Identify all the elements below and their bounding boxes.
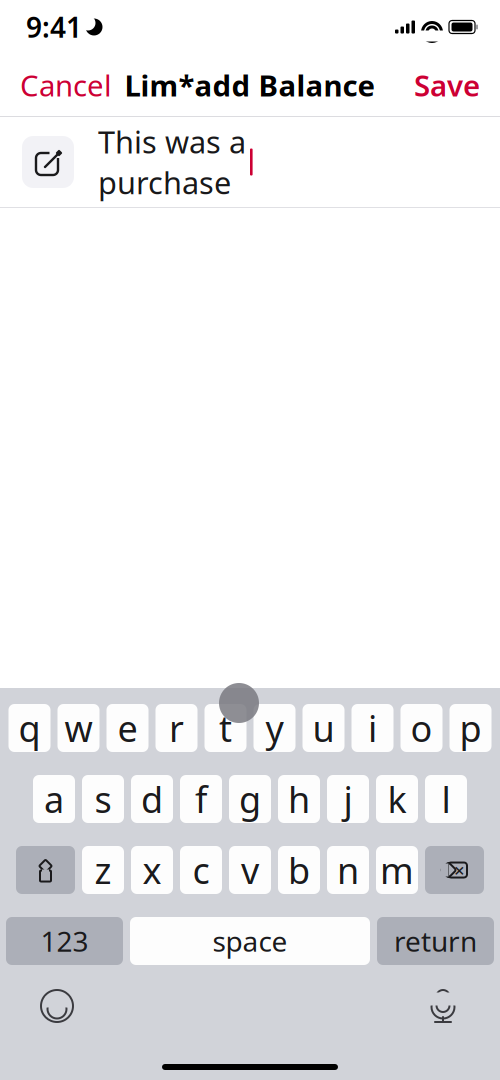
staticText: This was a purchase bbox=[98, 121, 246, 203]
button[interactable]: n bbox=[327, 846, 369, 894]
staticText: z bbox=[94, 846, 111, 894]
button[interactable]: k bbox=[376, 775, 418, 823]
button[interactable]: v bbox=[229, 846, 271, 894]
button[interactable]: a bbox=[33, 775, 75, 823]
staticText: j bbox=[343, 775, 352, 823]
button[interactable]: f bbox=[180, 775, 222, 823]
button[interactable]: o bbox=[400, 704, 442, 752]
button[interactable]: Dictation bbox=[416, 979, 470, 1033]
staticText: t bbox=[219, 704, 232, 752]
button[interactable]: m bbox=[376, 846, 418, 894]
button[interactable]: z bbox=[82, 846, 124, 894]
button[interactable]: i bbox=[351, 704, 393, 752]
staticText: l bbox=[441, 775, 450, 823]
button[interactable]: This was a purchase bbox=[74, 129, 287, 195]
button[interactable]: space bbox=[130, 917, 370, 965]
staticText: Cancel bbox=[20, 65, 112, 104]
staticText: space bbox=[212, 922, 287, 960]
button[interactable]: b bbox=[278, 846, 320, 894]
staticText: m bbox=[380, 846, 414, 894]
staticText: k bbox=[387, 775, 406, 823]
staticText: Lim*add Balance bbox=[124, 65, 375, 104]
button[interactable]: s bbox=[82, 775, 124, 823]
staticText: q bbox=[18, 704, 40, 752]
staticText: f bbox=[195, 775, 207, 823]
button[interactable]: w bbox=[57, 704, 99, 752]
staticText: 9:41 bbox=[26, 8, 82, 46]
staticText: d bbox=[141, 775, 163, 823]
staticText: n bbox=[337, 846, 359, 894]
staticText: 123 bbox=[40, 922, 88, 960]
button[interactable]: Emoji bbox=[30, 979, 84, 1033]
button[interactable]: h bbox=[278, 775, 320, 823]
button[interactable]: Save bbox=[394, 54, 500, 116]
button[interactable]: return bbox=[377, 917, 494, 965]
staticText: y bbox=[265, 704, 283, 752]
staticText: o bbox=[410, 704, 432, 752]
button[interactable]: y bbox=[253, 704, 295, 752]
button[interactable]: r bbox=[155, 704, 197, 752]
button[interactable]: l bbox=[425, 775, 467, 823]
button[interactable]: q bbox=[8, 704, 50, 752]
staticText: return bbox=[394, 922, 477, 960]
staticText: s bbox=[94, 775, 111, 823]
staticText: e bbox=[117, 704, 137, 752]
button[interactable]: e bbox=[106, 704, 148, 752]
staticText: x bbox=[142, 846, 161, 894]
staticText: h bbox=[288, 775, 310, 823]
button[interactable]: d bbox=[131, 775, 173, 823]
button[interactable]: p bbox=[449, 704, 491, 752]
button[interactable]: u bbox=[302, 704, 344, 752]
staticText: v bbox=[241, 846, 259, 894]
button[interactable]: g bbox=[229, 775, 271, 823]
button[interactable]: 123 bbox=[6, 917, 123, 965]
staticText: c bbox=[192, 846, 209, 894]
staticText: i bbox=[368, 704, 377, 752]
staticText: Save bbox=[414, 65, 480, 104]
button[interactable]: c bbox=[180, 846, 222, 894]
staticText: b bbox=[288, 846, 310, 894]
staticText: × bbox=[454, 858, 465, 882]
button[interactable]: Shift bbox=[16, 846, 75, 894]
staticText: r bbox=[169, 704, 184, 752]
staticText: a bbox=[44, 775, 64, 823]
button[interactable]: j bbox=[327, 775, 369, 823]
button[interactable]: t bbox=[204, 704, 246, 752]
button[interactable]: Delete bbox=[425, 846, 484, 894]
staticText: w bbox=[64, 704, 92, 752]
button[interactable]: x bbox=[131, 846, 173, 894]
staticText: p bbox=[459, 704, 481, 752]
staticText: u bbox=[312, 704, 334, 752]
button[interactable]: Cancel bbox=[0, 54, 132, 116]
staticText: g bbox=[239, 775, 261, 823]
